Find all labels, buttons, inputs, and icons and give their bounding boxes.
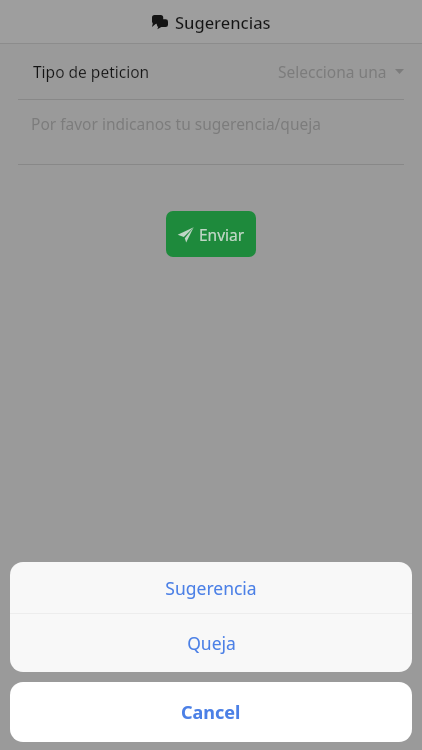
button[interactable]: Cancel	[10, 682, 412, 742]
staticText: Enviar	[199, 224, 245, 245]
button[interactable]: Queja	[10, 614, 412, 672]
staticText: Sugerencias	[175, 11, 271, 33]
button[interactable]: Tipo de peticion	[0, 44, 422, 99]
other: Sugerencias	[152, 15, 168, 29]
staticText: Por favor indicanos tu sugerencia/queja	[31, 113, 321, 134]
staticText: Queja	[187, 631, 236, 655]
staticText: Sugerencia	[165, 576, 257, 600]
other: Enviar	[177, 226, 194, 243]
button[interactable]: Por favor indicanos tu sugerencia/queja	[0, 100, 422, 164]
button[interactable]: Enviar	[166, 211, 256, 257]
staticText: Cancel	[181, 700, 241, 725]
button[interactable]: Sugerencia	[10, 562, 412, 613]
staticText: Tipo de peticion	[33, 61, 150, 82]
staticText: Selecciona una	[278, 61, 387, 82]
